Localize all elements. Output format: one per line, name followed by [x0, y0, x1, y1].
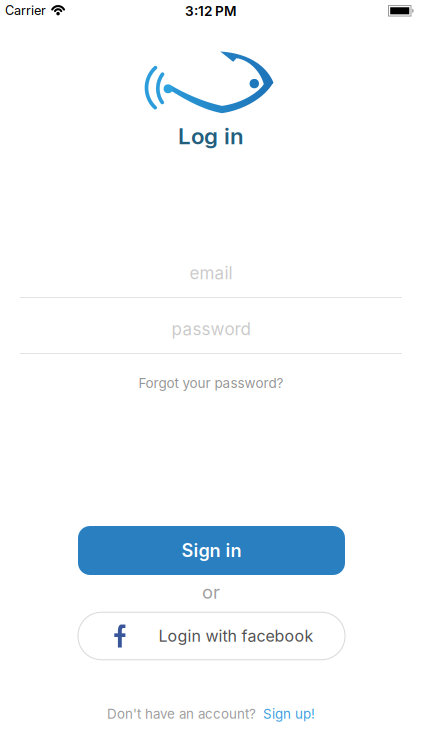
staticText: 3:12 PM [185, 3, 237, 19]
button[interactable]: Login with facebook [78, 612, 345, 660]
staticText: Sign up! [263, 706, 315, 722]
button[interactable]: password [20, 304, 402, 354]
staticText: Don't have an account? [107, 706, 256, 722]
staticText: email [189, 263, 232, 283]
button[interactable]: Forgot your password? [138, 375, 283, 391]
staticText: Carrier [5, 3, 46, 18]
staticText: password [171, 319, 250, 339]
staticText: or [202, 581, 220, 603]
staticText: Login with facebook [158, 626, 313, 646]
staticText: Forgot your password? [138, 375, 283, 391]
button[interactable]: email [20, 248, 402, 298]
staticText: Sign in [181, 539, 241, 561]
button[interactable]: Sign in [78, 526, 345, 575]
staticText: Log in [178, 122, 244, 149]
button[interactable]: Sign up! [263, 706, 315, 722]
